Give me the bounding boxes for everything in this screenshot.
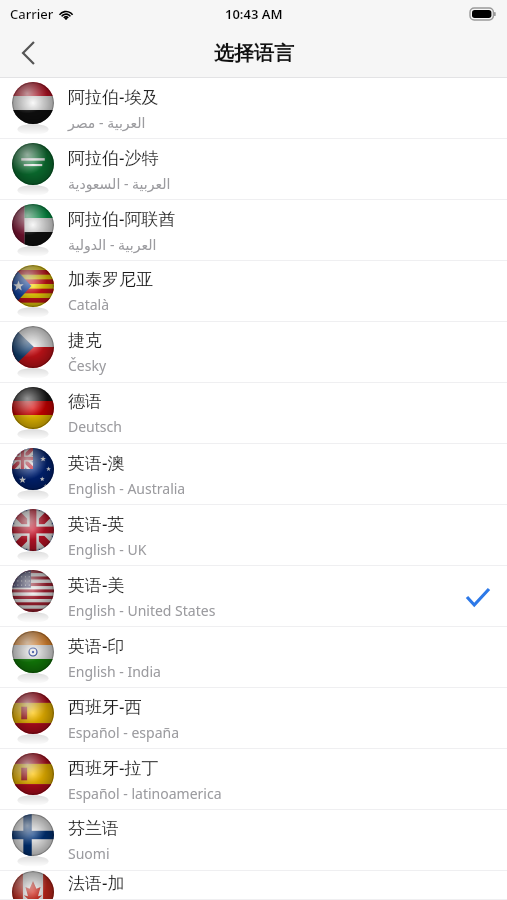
staticText: 阿拉伯-沙特	[68, 146, 159, 169]
staticText: 英语-印	[68, 634, 125, 657]
button[interactable]: 法语-加	[0, 871, 507, 900]
staticText: 英语-澳	[68, 451, 125, 474]
button[interactable]: 芬兰语	[0, 810, 507, 871]
staticText: 阿拉伯-阿联酋	[68, 207, 176, 230]
staticText: 德语	[68, 391, 102, 412]
staticText: English - UK	[68, 540, 147, 559]
staticText: 阿拉伯-埃及	[68, 85, 159, 108]
staticText: Català	[68, 295, 110, 314]
button[interactable]: 英语-英	[0, 505, 507, 566]
button[interactable]: 英语-澳	[0, 444, 507, 505]
staticText: English - India	[68, 662, 161, 681]
staticText: Español - latinoamerica	[68, 784, 222, 803]
button[interactable]: 德语	[0, 383, 507, 444]
button[interactable]: 西班牙-西	[0, 688, 507, 749]
staticText: 10:43 AM	[225, 5, 283, 23]
staticText: Deutsch	[68, 417, 122, 436]
staticText: 法语-加	[68, 871, 125, 894]
button[interactable]: 阿拉伯-沙特	[0, 139, 507, 200]
button[interactable]: 阿拉伯-埃及	[0, 78, 507, 139]
staticText: 捷克	[68, 330, 102, 351]
staticText: 西班牙-西	[68, 695, 142, 718]
staticText: Carrier	[10, 5, 54, 23]
button[interactable]: 捷克	[0, 322, 507, 383]
button[interactable]: 英语-美	[0, 566, 507, 627]
staticText: English - United States	[68, 601, 216, 620]
staticText: 英语-美	[68, 573, 125, 596]
staticText: 加泰罗尼亚	[68, 269, 153, 290]
button[interactable]: 西班牙-拉丁	[0, 749, 507, 810]
button[interactable]: 英语-印	[0, 627, 507, 688]
staticText: العربية - السعودية	[68, 174, 171, 193]
staticText: 选择语言	[214, 41, 294, 66]
staticText: Español - españa	[68, 723, 180, 742]
staticText: 芬兰语	[68, 818, 119, 839]
staticText: English - Australia	[68, 479, 186, 498]
button[interactable]: Back	[0, 28, 56, 78]
button[interactable]: 加泰罗尼亚	[0, 261, 507, 322]
staticText: العربية - مصر	[68, 113, 146, 132]
staticText: 英语-英	[68, 512, 125, 535]
staticText: Česky	[68, 356, 107, 375]
button[interactable]: 阿拉伯-阿联酋	[0, 200, 507, 261]
staticText: العربية - الدولية	[68, 235, 157, 254]
staticText: Suomi	[68, 844, 110, 863]
staticText: 西班牙-拉丁	[68, 756, 159, 779]
